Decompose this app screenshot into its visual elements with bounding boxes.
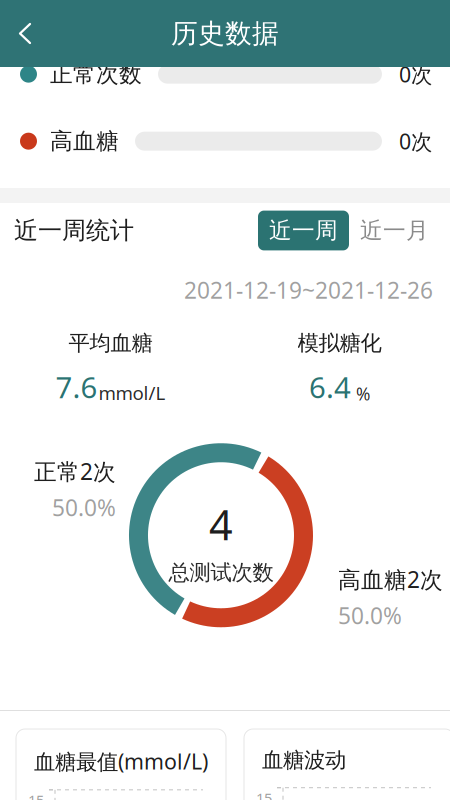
- staticText: 高血糖2次: [338, 564, 443, 594]
- staticText: 2021-12-19~2021-12-26: [184, 275, 433, 305]
- staticText: 高血糖: [50, 127, 119, 155]
- staticText: 模拟糖化: [297, 330, 381, 356]
- staticText: 6.4: [309, 367, 351, 406]
- staticText: 50.0%: [52, 492, 116, 522]
- staticText: 0次: [399, 127, 432, 155]
- staticText: 近一月: [360, 217, 429, 244]
- staticText: 7.6: [55, 367, 97, 406]
- staticText: 15: [256, 788, 272, 800]
- staticText: %: [356, 382, 370, 405]
- staticText: 总测试次数: [168, 560, 273, 586]
- staticText: 近一周统计: [14, 216, 134, 245]
- staticText: 正常2次: [34, 456, 116, 486]
- button[interactable]: 近一周: [258, 211, 349, 250]
- staticText: 近一周: [269, 217, 338, 244]
- staticText: 血糖波动: [262, 747, 346, 773]
- staticText: 0次: [399, 60, 432, 88]
- staticText: 50.0%: [338, 600, 402, 630]
- staticText: 4: [209, 497, 233, 552]
- staticText: 正常次数: [50, 60, 142, 88]
- staticText: 15: [28, 790, 44, 800]
- staticText: 平均血糖: [68, 330, 152, 356]
- staticText: 血糖最值(mmol/L): [34, 747, 208, 775]
- button[interactable]: 近一月: [349, 211, 440, 250]
- button[interactable]: Back: [0, 0, 50, 67]
- staticText: mmol/L: [98, 380, 165, 405]
- staticText: 历史数据: [171, 17, 279, 50]
